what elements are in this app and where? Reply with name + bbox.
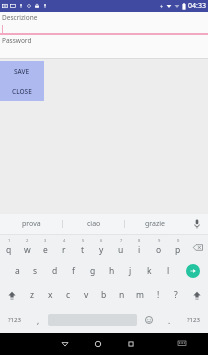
button[interactable]: Home xyxy=(81,333,114,355)
button[interactable]: . xyxy=(160,307,179,333)
button[interactable]: prova xyxy=(0,214,62,234)
button[interactable]: SAVE xyxy=(0,61,44,81)
staticText: z xyxy=(30,289,34,301)
button[interactable]: v xyxy=(77,283,95,307)
button[interactable]: , xyxy=(29,307,48,333)
staticText: c xyxy=(66,289,71,301)
staticText: 5 xyxy=(82,238,85,243)
staticText: f xyxy=(72,265,75,277)
staticText: 6 xyxy=(100,238,103,243)
staticText: h xyxy=(109,265,115,277)
staticText: 8 xyxy=(138,238,141,243)
staticText: a xyxy=(15,265,20,277)
button[interactable]: 3 xyxy=(36,235,54,259)
button[interactable]: 9 xyxy=(149,235,168,259)
button[interactable]: k xyxy=(140,259,159,283)
button[interactable]: 7 xyxy=(111,235,130,259)
staticText: prova xyxy=(22,219,41,229)
button[interactable]: ! xyxy=(149,283,167,307)
staticText: . xyxy=(168,315,171,326)
staticText: e xyxy=(43,244,48,256)
button[interactable]: j xyxy=(121,259,140,283)
staticText: ciao xyxy=(87,219,101,229)
button[interactable]: ?123 xyxy=(179,307,208,333)
button[interactable]: g xyxy=(83,259,102,283)
button[interactable]: ?123 xyxy=(0,307,29,333)
button[interactable]: Voice input xyxy=(186,214,208,234)
staticText: g xyxy=(90,265,96,277)
staticText: k xyxy=(147,265,152,277)
staticText: o xyxy=(156,244,162,256)
button[interactable]: a xyxy=(8,259,26,283)
staticText: SAVE xyxy=(14,67,30,76)
staticText: x xyxy=(48,289,53,301)
button[interactable]: Hide keyboard xyxy=(165,333,198,355)
button[interactable]: 2 xyxy=(18,235,36,259)
button[interactable]: d xyxy=(45,259,64,283)
staticText: Password xyxy=(2,36,32,45)
button[interactable]: 5 xyxy=(73,235,92,259)
staticText: b xyxy=(101,289,107,301)
staticText: 04:33 xyxy=(188,1,206,11)
button[interactable]: 4 xyxy=(54,235,73,259)
button[interactable]: CLOSE xyxy=(0,81,44,101)
staticText: ! xyxy=(157,289,160,301)
button[interactable]: x xyxy=(41,283,59,307)
button[interactable]: 1 xyxy=(0,235,18,259)
button[interactable]: Enter xyxy=(178,259,208,283)
staticText: grazie xyxy=(145,219,166,229)
button[interactable]: 0 xyxy=(168,235,187,259)
staticText: w xyxy=(24,244,31,256)
button[interactable]: ciao xyxy=(63,214,124,234)
staticText: 0 xyxy=(177,238,180,243)
staticText: i xyxy=(138,244,141,256)
staticText: ?123 xyxy=(8,316,21,324)
button[interactable]: f xyxy=(64,259,83,283)
staticText: m xyxy=(136,289,144,301)
staticText: q xyxy=(6,244,12,256)
staticText: 3 xyxy=(44,238,47,243)
staticText: ? xyxy=(174,289,178,301)
button[interactable]: Shift xyxy=(0,283,23,307)
staticText: 2 xyxy=(26,238,29,243)
button[interactable]: Shift xyxy=(185,283,208,307)
staticText: 7 xyxy=(120,238,123,243)
staticText: ?123 xyxy=(187,316,200,324)
staticText: v xyxy=(84,289,89,301)
button[interactable]: h xyxy=(102,259,121,283)
staticText: 9 xyxy=(158,238,161,243)
button[interactable]: grazie xyxy=(125,214,186,234)
staticText: u xyxy=(118,244,124,256)
staticText: p xyxy=(175,244,181,256)
button[interactable]: Emoji xyxy=(137,307,160,333)
button[interactable]: c xyxy=(59,283,77,307)
button[interactable]: m xyxy=(131,283,149,307)
button[interactable]: Backspace xyxy=(187,235,208,259)
staticText: r xyxy=(62,244,66,256)
staticText: n xyxy=(119,289,125,301)
staticText: CLOSE xyxy=(12,87,32,96)
staticText: Descrizione xyxy=(2,13,38,22)
button[interactable]: 6 xyxy=(92,235,111,259)
staticText: d xyxy=(52,265,58,277)
button[interactable]: l xyxy=(159,259,178,283)
staticText: 1 xyxy=(8,238,11,243)
staticText: t xyxy=(81,244,85,256)
button[interactable]: 8 xyxy=(130,235,149,259)
staticText: s xyxy=(33,265,38,277)
staticText: l xyxy=(167,265,170,277)
staticText: 4 xyxy=(63,238,66,243)
button[interactable] xyxy=(0,22,208,35)
button[interactable]: s xyxy=(26,259,45,283)
button[interactable]: ? xyxy=(167,283,185,307)
button[interactable]: Back xyxy=(48,333,81,355)
button[interactable]: b xyxy=(95,283,113,307)
staticText: , xyxy=(37,315,40,326)
staticText: y xyxy=(99,244,104,256)
button[interactable]: n xyxy=(113,283,131,307)
staticText: j xyxy=(129,265,132,277)
button[interactable]: z xyxy=(23,283,41,307)
button[interactable]: Recents xyxy=(114,333,147,355)
